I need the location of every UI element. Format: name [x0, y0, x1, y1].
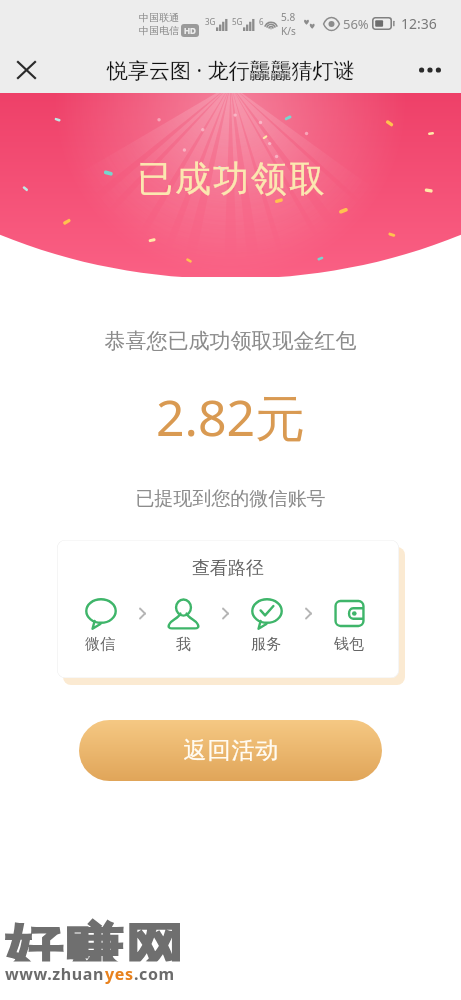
staticText: 3G — [205, 16, 216, 27]
staticText: 2.82元 — [0, 383, 461, 451]
staticText: 中国联通 — [139, 11, 179, 24]
staticText: 56% — [343, 15, 369, 33]
staticText: 好赚网 — [3, 916, 184, 962]
staticText: 查看路径 — [192, 557, 264, 580]
staticText: 已提现到您的微信账号 — [0, 487, 461, 511]
staticText: 钱包 — [334, 635, 364, 654]
button[interactable]: Close — [6, 50, 46, 90]
staticText: 6 — [259, 16, 264, 27]
staticText: .com — [134, 963, 175, 985]
staticText: 悦享云图 · 龙行龘龘猜灯谜 — [107, 56, 355, 85]
button[interactable]: 我 — [158, 597, 208, 654]
staticText: yes — [105, 963, 134, 985]
staticText: HD — [184, 25, 196, 36]
staticText: 中国电信 — [139, 24, 179, 37]
staticText: K/s — [281, 24, 296, 38]
staticText: 微信 — [85, 635, 115, 654]
staticText: 返回活动 — [183, 736, 279, 765]
staticText: 我 — [176, 635, 191, 654]
staticText: 服务 — [251, 635, 281, 654]
staticText: 12:36 — [401, 14, 437, 33]
button[interactable]: 返回活动 — [79, 720, 382, 781]
staticText: 5.8 — [281, 10, 296, 24]
staticText: 已成功领取 — [136, 156, 326, 201]
button[interactable]: 微信 — [75, 597, 125, 654]
button[interactable]: More options — [410, 50, 450, 90]
staticText: 5G — [232, 16, 243, 27]
staticText: www.zhuan — [5, 963, 105, 985]
button[interactable]: 钱包 — [324, 597, 374, 654]
button[interactable]: 服务 — [241, 597, 291, 654]
staticText: 恭喜您已成功领取现金红包 — [0, 328, 461, 354]
